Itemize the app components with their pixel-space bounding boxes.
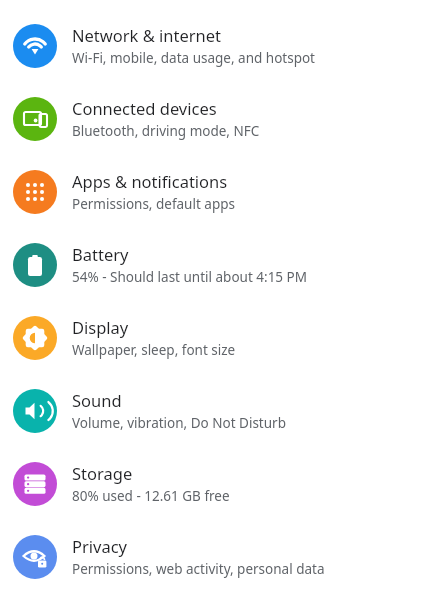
staticText: Permissions, default apps bbox=[72, 195, 235, 213]
staticText: Network & internet bbox=[72, 24, 222, 46]
staticText: 54% - Should last until about 4:15 PM bbox=[72, 268, 308, 286]
staticText: Privacy bbox=[72, 535, 128, 557]
other: Storage bbox=[13, 462, 57, 506]
staticText: Volume, vibration, Do Not Disturb bbox=[72, 414, 286, 432]
staticText: Sound bbox=[72, 389, 122, 411]
other: Display bbox=[13, 316, 57, 360]
button[interactable]: Connected devices bbox=[0, 82, 429, 155]
staticText: Apps & notifications bbox=[72, 170, 228, 192]
button[interactable]: Storage bbox=[0, 447, 429, 520]
staticText: 80% used - 12.61 GB free bbox=[72, 487, 230, 505]
other: Apps & notifications bbox=[13, 170, 57, 214]
staticText: Connected devices bbox=[72, 97, 217, 119]
button[interactable]: Network & internet bbox=[0, 9, 429, 82]
staticText: Storage bbox=[72, 462, 133, 484]
button[interactable]: Apps & notifications bbox=[0, 155, 429, 228]
staticText: Wallpaper, sleep, font size bbox=[72, 341, 236, 359]
staticText: Battery bbox=[72, 243, 129, 265]
other: Privacy bbox=[13, 535, 57, 579]
button[interactable]: Display bbox=[0, 301, 429, 374]
button[interactable]: Battery bbox=[0, 228, 429, 301]
staticText: Display bbox=[72, 316, 129, 338]
button[interactable]: Privacy bbox=[0, 520, 429, 593]
button[interactable]: Sound bbox=[0, 374, 429, 447]
other: Sound bbox=[13, 389, 57, 433]
staticText: Wi-Fi, mobile, data usage, and hotspot bbox=[72, 49, 315, 67]
staticText: Bluetooth, driving mode, NFC bbox=[72, 122, 260, 140]
other: Battery bbox=[13, 243, 57, 287]
other: Network & internet bbox=[13, 24, 57, 68]
staticText: Permissions, web activity, personal data bbox=[72, 560, 325, 578]
other: Connected devices bbox=[13, 97, 57, 141]
